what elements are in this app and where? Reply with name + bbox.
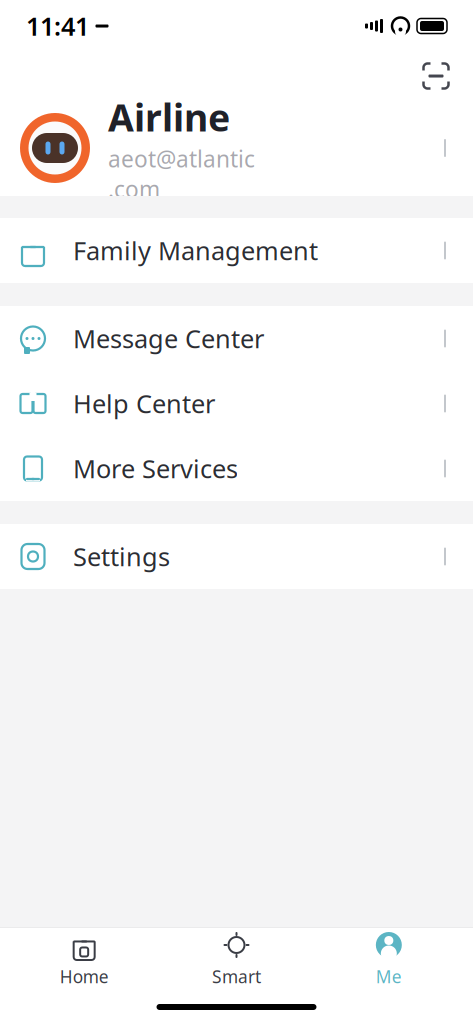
button[interactable]: Scan — [419, 52, 473, 100]
staticText: Family Management — [73, 234, 318, 267]
staticText: 11:41 — [26, 9, 89, 43]
button[interactable]: Airline — [0, 100, 473, 196]
button[interactable]: Settings — [0, 524, 473, 589]
button[interactable]: Message Center — [0, 306, 473, 371]
button[interactable]: Home — [8, 928, 160, 990]
staticText: More Services — [73, 452, 238, 485]
staticText: Airline — [108, 92, 230, 142]
button[interactable]: More Services — [0, 436, 473, 501]
staticText: Smart — [212, 965, 261, 988]
button[interactable]: Smart — [160, 928, 313, 990]
button[interactable]: Family Management — [0, 218, 473, 283]
button[interactable]: Me — [313, 928, 465, 990]
staticText: Message Center — [73, 322, 264, 355]
staticText: Settings — [73, 540, 170, 573]
staticText: aeot@atlantic.com — [108, 144, 255, 204]
staticText: Home — [60, 965, 109, 988]
staticText: Help Center — [73, 387, 215, 420]
staticText: Me — [376, 965, 402, 988]
button[interactable]: Help Center — [0, 371, 473, 436]
